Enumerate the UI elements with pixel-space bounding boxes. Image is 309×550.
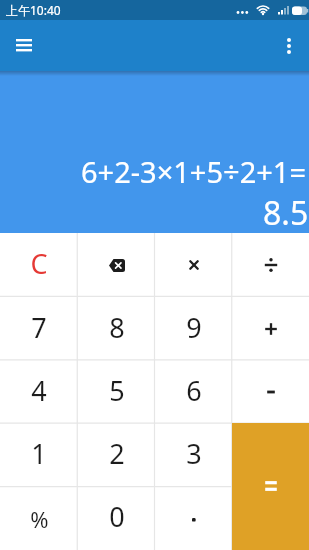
staticText: 2 xyxy=(109,435,125,472)
button[interactable]: 4 xyxy=(0,361,78,424)
button[interactable] xyxy=(275,32,303,60)
button[interactable]: 6 xyxy=(155,361,232,424)
button[interactable]: % xyxy=(0,487,78,550)
button[interactable] xyxy=(78,233,155,297)
staticText: 上午10:40 xyxy=(6,2,61,18)
button[interactable] xyxy=(155,233,232,297)
button[interactable]: 0 xyxy=(78,487,155,550)
button[interactable]: 7 xyxy=(0,297,78,361)
staticText: 4 xyxy=(31,372,47,409)
button[interactable] xyxy=(232,233,309,297)
staticText: 7 xyxy=(31,309,47,346)
staticText: 5 xyxy=(109,372,125,409)
staticText: 6 xyxy=(186,372,202,409)
staticText: C xyxy=(30,245,48,282)
button[interactable]: 8 xyxy=(78,297,155,361)
button[interactable]: 2 xyxy=(78,424,155,487)
button[interactable]: C xyxy=(0,233,78,297)
button[interactable]: 1 xyxy=(0,424,78,487)
staticText: 6+2-3×1+5÷2+1= xyxy=(81,152,306,191)
staticText: 3 xyxy=(186,435,202,472)
staticText: 1 xyxy=(31,435,47,472)
staticText: 9 xyxy=(186,309,202,346)
button[interactable] xyxy=(232,423,309,550)
button[interactable]: 5 xyxy=(78,361,155,424)
button[interactable] xyxy=(155,487,232,550)
staticText: % xyxy=(30,504,49,534)
button[interactable] xyxy=(8,30,40,62)
staticText: 0 xyxy=(109,498,125,535)
button[interactable] xyxy=(232,297,309,360)
button[interactable]: 9 xyxy=(155,297,232,361)
staticText: 8 xyxy=(109,309,125,346)
button[interactable] xyxy=(232,360,309,423)
button[interactable]: 3 xyxy=(155,424,232,487)
staticText: 8.5 xyxy=(263,191,309,235)
